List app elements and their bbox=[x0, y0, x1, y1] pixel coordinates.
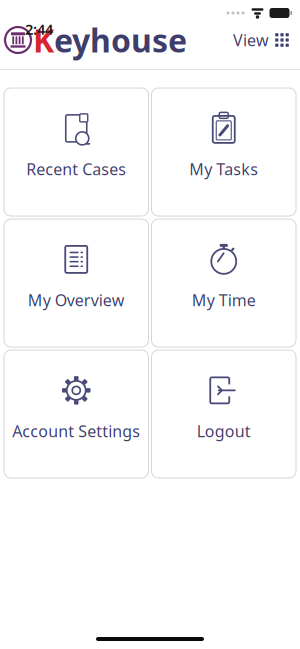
staticText: My Time bbox=[192, 289, 256, 311]
staticText: My Tasks bbox=[189, 158, 258, 180]
staticText: Recent Cases bbox=[26, 158, 126, 180]
button[interactable]: My Tasks bbox=[151, 88, 296, 216]
button[interactable]: Logout bbox=[151, 350, 296, 478]
button[interactable]: View bbox=[229, 25, 294, 55]
staticText: eyhouse bbox=[54, 19, 187, 61]
staticText: 2:44 bbox=[25, 19, 53, 39]
button[interactable]: My Time bbox=[151, 219, 296, 347]
staticText: Account Settings bbox=[12, 420, 140, 442]
staticText: My Overview bbox=[28, 289, 125, 311]
staticText: View bbox=[233, 29, 269, 51]
staticText: Logout bbox=[197, 420, 251, 442]
button[interactable]: Account Settings bbox=[4, 350, 148, 478]
button[interactable]: My Overview bbox=[4, 219, 148, 347]
staticText: K bbox=[33, 19, 54, 61]
button[interactable]: Recent Cases bbox=[4, 88, 148, 216]
